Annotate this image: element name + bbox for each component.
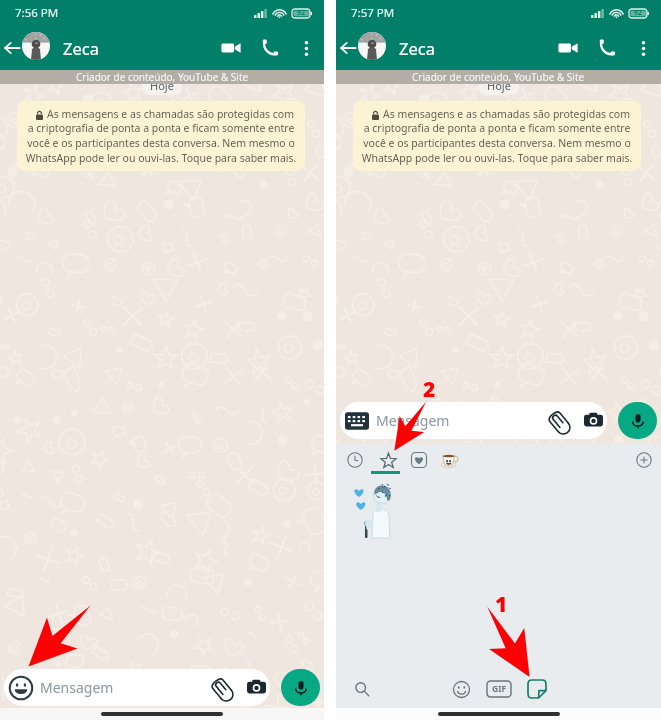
staticText: Criador de conteúdo, YouTube & Site	[76, 70, 249, 84]
staticText: Hoje	[150, 78, 174, 93]
button[interactable]: Add sticker pack	[628, 444, 660, 476]
button[interactable]: As mensagens e as chamadas são protegida…	[25, 107, 297, 165]
staticText: 1	[495, 590, 508, 619]
button[interactable]: Voice call	[255, 33, 285, 63]
button[interactable]: More options	[291, 33, 321, 63]
button[interactable]: Record voice message	[618, 402, 657, 439]
button[interactable]: Voice call	[592, 33, 622, 63]
staticText: 92	[634, 8, 643, 18]
staticText: As mensagens e as chamadas são protegida…	[25, 107, 297, 165]
button[interactable]: Recent stickers	[339, 444, 371, 476]
staticText: Zeca	[399, 37, 435, 59]
button[interactable]: More options	[628, 33, 658, 63]
button[interactable]: Hearts sticker pack	[403, 444, 435, 476]
staticText: GIF	[492, 683, 507, 695]
button[interactable]: Search stickers	[346, 673, 378, 705]
button[interactable]: As mensagens e as chamadas são protegida…	[361, 107, 633, 165]
button[interactable]: Stickers	[521, 673, 553, 705]
button[interactable]: Profile photo	[22, 32, 50, 60]
button[interactable]: Video call	[216, 33, 246, 63]
button[interactable]: Record voice message	[281, 669, 320, 706]
staticText: 2	[423, 375, 436, 404]
button[interactable]: Keyboard	[340, 402, 607, 439]
button[interactable]: Profile photo	[358, 32, 386, 60]
button[interactable]: Emoji	[9, 676, 33, 700]
button[interactable]: Hoje	[150, 78, 174, 93]
staticText: Mensagem	[376, 411, 450, 430]
button[interactable]: Back	[0, 36, 24, 60]
staticText: Mensagem	[40, 678, 114, 697]
button[interactable]: Back	[336, 36, 360, 60]
button[interactable]: GIF	[483, 673, 515, 705]
button[interactable]: Video call	[553, 33, 583, 63]
button[interactable]: Keyboard	[345, 409, 369, 433]
staticText: 92	[297, 8, 306, 18]
button[interactable]: Camera	[584, 411, 603, 430]
button[interactable]: Attach	[547, 410, 569, 432]
button[interactable]: Emoji	[4, 669, 270, 706]
staticText: 7:56 PM	[15, 5, 59, 21]
staticText: Zeca	[63, 37, 99, 59]
staticText: As mensagens e as chamadas são protegida…	[361, 107, 633, 165]
button[interactable]: Camera	[247, 678, 266, 697]
button[interactable]: Hoje	[487, 78, 511, 93]
staticText: Hoje	[487, 78, 511, 93]
staticText: 7:57 PM	[351, 5, 395, 21]
button[interactable]: Coffee sticker pack	[434, 444, 466, 476]
button[interactable]: Favorite stickers	[372, 444, 404, 476]
button[interactable]: Emoji	[445, 673, 477, 705]
staticText: Criador de conteúdo, YouTube & Site	[412, 70, 585, 84]
button[interactable]: Attach	[210, 677, 232, 699]
